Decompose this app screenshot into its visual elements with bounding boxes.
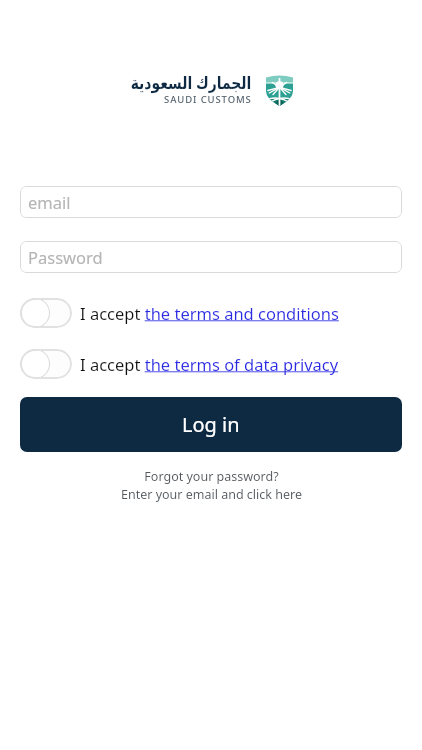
button[interactable]: I accept the terms of data privacy xyxy=(80,353,339,375)
button[interactable]: I accept the terms and conditions xyxy=(80,302,339,324)
button[interactable] xyxy=(20,298,72,328)
staticText: SAUDI CUSTOMS xyxy=(164,93,252,106)
staticText: email xyxy=(28,191,71,213)
staticText: الجمارك السعودية xyxy=(131,71,252,94)
button[interactable]: Log in xyxy=(20,397,402,452)
button[interactable]: email xyxy=(20,186,402,218)
staticText: Password xyxy=(28,246,103,268)
button[interactable]: Password xyxy=(20,241,402,273)
button[interactable] xyxy=(20,349,72,379)
button[interactable]: Forgot your password? Enter your email a… xyxy=(121,468,302,502)
staticText: Log in xyxy=(182,411,240,438)
